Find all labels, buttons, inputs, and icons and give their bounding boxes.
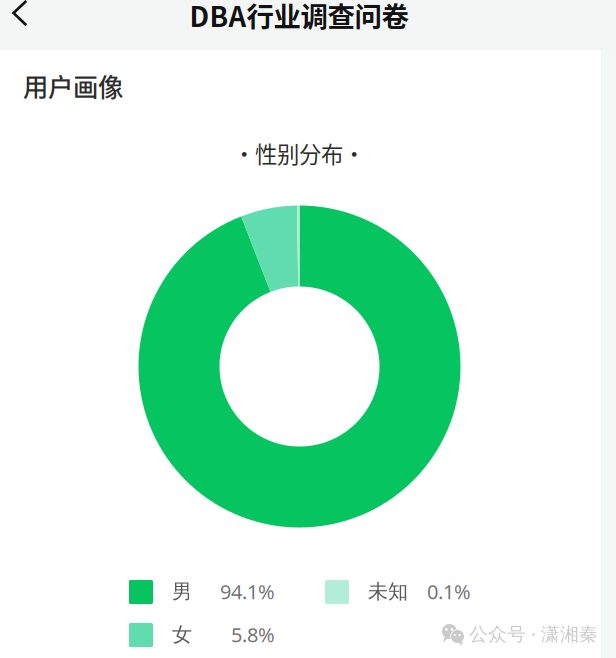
staticText: 男: [172, 579, 192, 604]
staticText: DBA行业调查问卷: [189, 0, 408, 35]
staticText: 公众号 · 潇湘秦: [469, 621, 598, 646]
staticText: ·性别分布·: [233, 137, 365, 169]
staticText: 用户画像: [23, 67, 123, 104]
button[interactable]: Back: [0, 0, 42, 35]
staticText: 0.1%: [427, 578, 471, 605]
button[interactable]: 未知: [325, 580, 521, 603]
staticText: 女: [172, 622, 192, 647]
button[interactable]: 女: [129, 623, 325, 646]
staticText: 未知: [368, 579, 408, 604]
button[interactable]: 男: [129, 580, 325, 603]
staticText: 94.1%: [220, 578, 275, 605]
staticText: 5.8%: [231, 621, 275, 648]
